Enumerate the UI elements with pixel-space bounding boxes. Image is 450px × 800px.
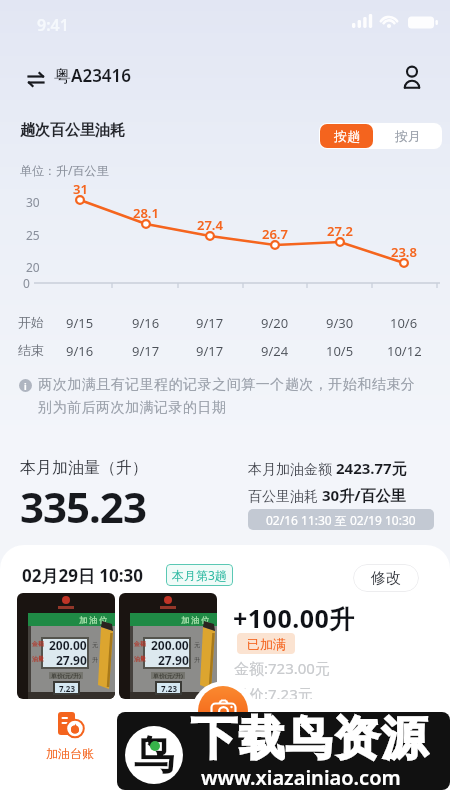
staticText: 27.90	[56, 652, 87, 668]
staticText: 金额	[32, 640, 44, 648]
staticText: 20	[26, 259, 40, 275]
staticText: 粤A23416	[54, 64, 132, 87]
staticText: 30升/百公里	[322, 485, 406, 505]
staticText: 升	[194, 656, 200, 664]
staticText: 元	[92, 641, 98, 649]
staticText: i	[24, 380, 27, 392]
staticText: 加 油 位	[181, 614, 210, 625]
staticText: 趟次百公里油耗	[20, 121, 125, 140]
staticText: 25	[26, 227, 40, 243]
staticText: 按趟	[334, 128, 360, 144]
staticText: 百公里油耗	[248, 486, 322, 505]
button[interactable]	[20, 64, 52, 96]
staticText: 335.23	[20, 478, 146, 535]
staticText: 油量	[32, 655, 44, 663]
staticText: 鸟	[134, 730, 174, 780]
staticText: 本月第3趟	[172, 567, 227, 583]
staticText: 10/6	[390, 314, 418, 332]
staticText: 9/17	[196, 314, 224, 332]
staticText: 升	[92, 656, 98, 664]
staticText: 单价:7.23元	[234, 684, 313, 704]
staticText: 9/17	[196, 342, 224, 360]
staticText: 下载鸟资源	[191, 712, 429, 768]
staticText: 2423.77元	[336, 458, 407, 478]
staticText: 9/30	[326, 314, 354, 332]
staticText: 30	[26, 194, 40, 210]
staticText: 两次加满且有记里程的记录之间算一个趟次，开始和结束分	[38, 376, 415, 394]
staticText: 结束	[18, 342, 44, 358]
button[interactable]: 按月	[373, 123, 442, 149]
staticText: 200.00	[49, 637, 87, 653]
button[interactable]: 加油台账	[36, 704, 104, 764]
staticText: 9/17	[132, 342, 160, 360]
staticText: 200.00	[151, 637, 189, 653]
staticText: 26.7	[262, 225, 288, 243]
staticText: 10/12	[387, 342, 422, 360]
button[interactable]	[198, 686, 248, 736]
staticText: 28.1	[133, 204, 159, 222]
staticText: 按月	[395, 128, 421, 144]
staticText: 9/16	[132, 314, 160, 332]
staticText: 31	[73, 180, 88, 198]
staticText: 02/16 11:30 至 02/19 10:30	[266, 512, 416, 528]
button[interactable]: 修改	[353, 564, 419, 592]
staticText: 27.90	[158, 652, 189, 668]
button[interactable]	[396, 60, 428, 94]
staticText: 9/24	[261, 342, 289, 360]
staticText: 7.23	[161, 683, 177, 694]
staticText: 9/16	[66, 342, 94, 360]
staticText: 本月加油量（升）	[20, 458, 148, 478]
staticText: 10/5	[326, 342, 354, 360]
staticText: 加 油 位	[79, 614, 108, 625]
staticText: 23.8	[391, 243, 417, 261]
staticText: 02月29日 10:30	[22, 564, 143, 587]
staticText: 金额:723.00元	[234, 658, 330, 678]
staticText: 9:41	[37, 14, 69, 36]
staticText: 已加满	[247, 636, 286, 652]
staticText: 修改	[371, 569, 401, 588]
staticText: 开始	[18, 314, 44, 330]
staticText: 9/20	[261, 314, 289, 332]
staticText: 加油台账	[46, 746, 94, 761]
staticText: 0	[23, 275, 30, 291]
staticText: 别为前后两次加满记录的日期	[38, 399, 227, 417]
staticText: 单价(元/升)	[153, 672, 183, 679]
staticText: 7.23	[59, 683, 75, 694]
staticText: www.xiazainiao.com	[201, 764, 401, 790]
staticText: 元	[194, 641, 200, 649]
staticText: 金额	[134, 640, 146, 648]
button[interactable]: 按趟	[320, 124, 373, 148]
staticText: 油量	[134, 655, 146, 663]
staticText: 27.2	[327, 222, 353, 240]
staticText: 单价(元/升)	[51, 672, 81, 679]
staticText: 单位：升/百公里	[20, 162, 109, 178]
staticText: 本月加油金额	[248, 459, 336, 478]
staticText: 9/15	[66, 314, 94, 332]
staticText: 27.4	[197, 216, 223, 234]
staticText: +100.00升	[233, 601, 355, 635]
